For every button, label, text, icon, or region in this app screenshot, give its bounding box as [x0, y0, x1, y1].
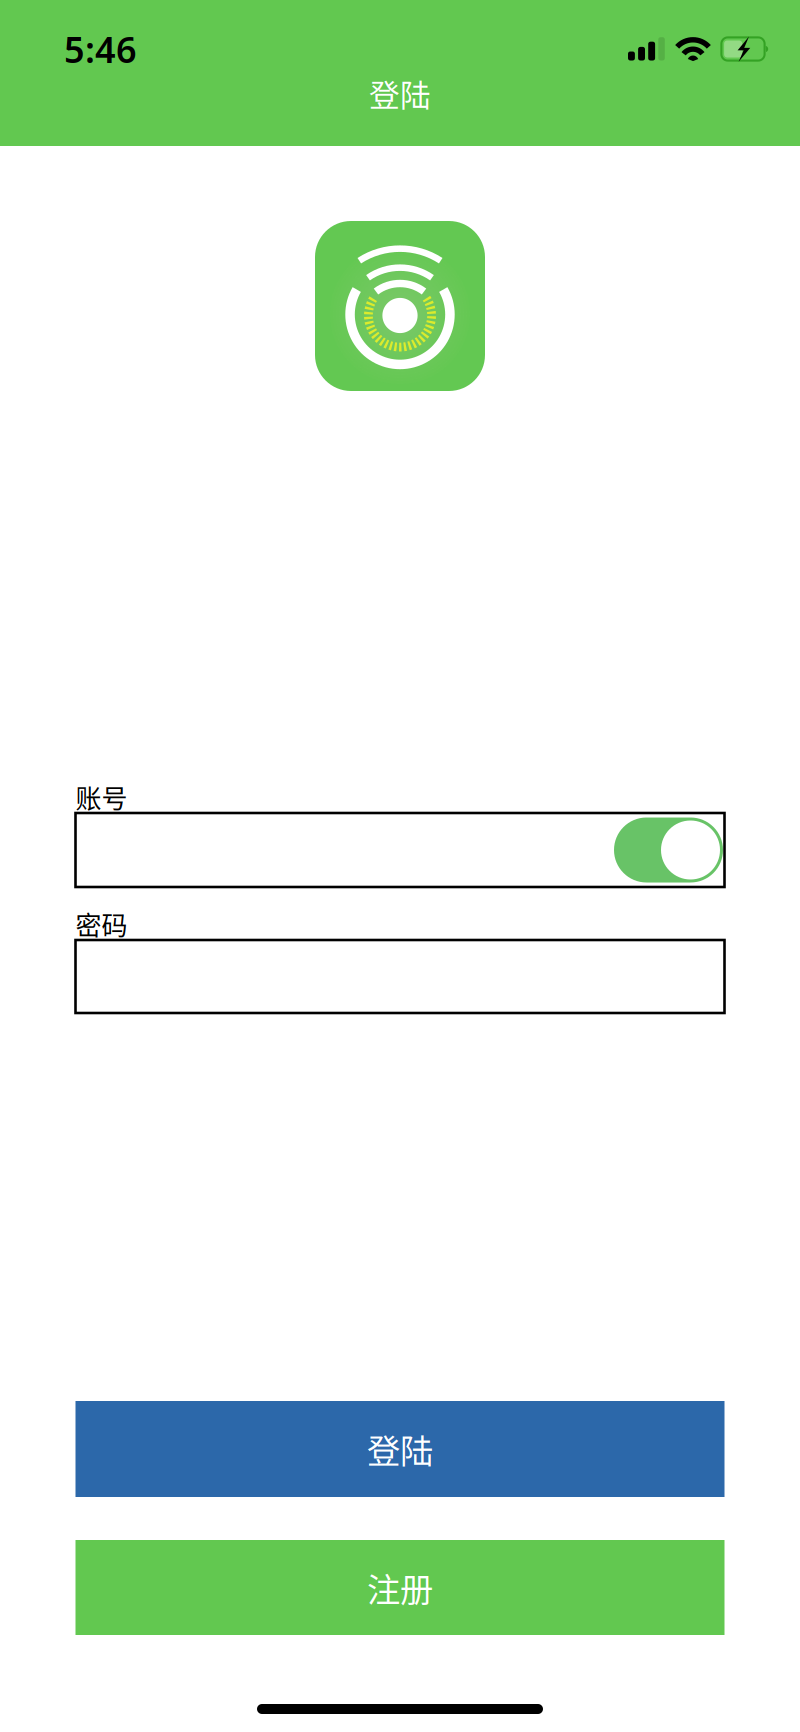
- button[interactable]: 注册: [75, 1540, 724, 1635]
- staticText: 注册: [367, 1563, 433, 1612]
- staticText: 账号: [75, 778, 127, 816]
- button[interactable]: [75, 813, 724, 887]
- button[interactable]: 登陆: [75, 1401, 724, 1497]
- staticText: 登陆: [367, 1425, 433, 1473]
- staticText: 5:46: [64, 25, 137, 73]
- staticText: 密码: [75, 905, 127, 943]
- button[interactable]: [75, 940, 724, 1013]
- staticText: 登陆: [369, 71, 431, 116]
